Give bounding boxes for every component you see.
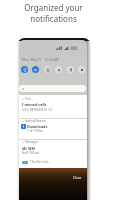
staticText: (+91) 9876543210 (1) (22, 108, 52, 112)
button[interactable]: Quick setting 2 (44, 66, 51, 73)
button[interactable]: Quick setting 1 (32, 66, 39, 73)
button[interactable]: Quick setting 5 (78, 66, 85, 73)
staticText: Mr SIM (22, 146, 36, 151)
button[interactable] (19, 85, 86, 92)
button[interactable]: Quick setting 3 (55, 66, 62, 73)
button[interactable]: Android System (19, 118, 87, 138)
staticText: Post (25, 97, 31, 101)
staticText: I missed calls (22, 102, 47, 107)
button[interactable]: Messages (19, 139, 87, 169)
staticText: notifications (30, 13, 77, 24)
staticText: Organized your (24, 2, 83, 13)
staticText: Half 100 out (22, 151, 40, 155)
button[interactable]: Quick setting 0 (21, 66, 28, 73)
staticText: 1 of 10 files (27, 129, 44, 133)
button[interactable]: Quick setting 4 (67, 66, 74, 73)
button[interactable]: Post (19, 95, 87, 118)
staticText: Mon, May 21 10:26 AM (22, 58, 59, 62)
staticText: Messages (25, 140, 38, 144)
staticText: Android System (25, 119, 46, 123)
staticText: Downloads (27, 124, 48, 129)
staticText: This file is be... (30, 160, 51, 164)
button[interactable]: Clear (73, 168, 87, 180)
